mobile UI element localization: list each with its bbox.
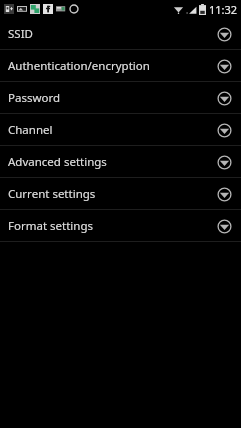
staticText: Password [8,90,215,106]
other: Expand Password [215,89,233,107]
button[interactable]: Format settings [0,210,241,241]
staticText: Channel [8,122,215,138]
button[interactable]: Channel [0,114,241,145]
other: Expand Format settings [215,217,233,235]
staticText: Authentication/encryption [8,58,215,74]
other: Expand SSID [215,25,233,43]
other: Expand Authentication/encryption [215,57,233,75]
button[interactable]: Password [0,82,241,113]
staticText: Advanced settings [8,154,215,170]
button[interactable]: SSID [0,18,241,49]
staticText: 11:32 [209,2,238,17]
other: Expand Advanced settings [215,153,233,171]
button[interactable]: Advanced settings [0,146,241,177]
button[interactable]: Current settings [0,178,241,209]
staticText: Current settings [8,186,215,202]
staticText: SSID [8,26,215,42]
other: Expand Current settings [215,185,233,203]
staticText: Format settings [8,218,215,234]
button[interactable]: Authentication/encryption [0,50,241,81]
other: Expand Channel [215,121,233,139]
